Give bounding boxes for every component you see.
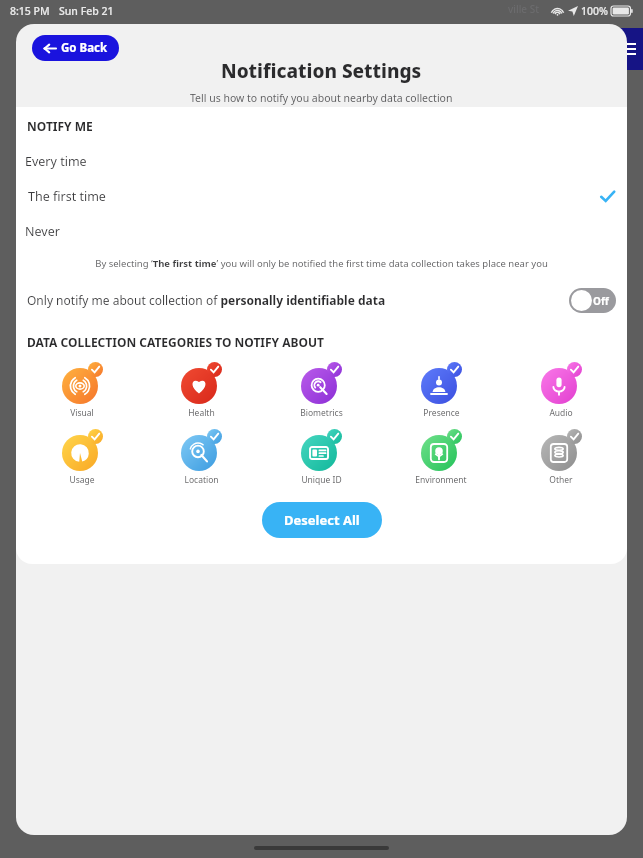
staticText: NOTIFY ME — [27, 118, 93, 134]
staticText: Only notify me about collection of perso… — [27, 292, 386, 308]
button[interactable]: Usage — [22, 429, 141, 486]
button[interactable]: Location — [141, 429, 261, 486]
staticText: Deselect All — [284, 511, 360, 529]
button[interactable]: Other — [501, 429, 621, 486]
staticText: Usage — [69, 474, 95, 486]
button[interactable]: Go Back — [32, 35, 119, 61]
button[interactable]: The first time — [19, 179, 624, 214]
staticText: By selecting ‘The first time’ you will o… — [95, 257, 548, 270]
staticText: Never — [25, 223, 60, 240]
button[interactable]: Presence — [381, 362, 501, 419]
staticText: Health — [188, 407, 215, 419]
button[interactable]: Menu — [617, 28, 643, 70]
staticText: Notification Settings — [221, 58, 422, 84]
staticText: 100% — [581, 4, 608, 18]
staticText: Environment — [415, 474, 467, 486]
staticText: Other — [549, 474, 573, 486]
staticText: Go Back — [61, 40, 108, 56]
button[interactable]: Biometrics — [261, 362, 381, 419]
staticText: Every time — [25, 153, 87, 170]
staticText: ville St — [508, 2, 540, 16]
staticText: Off — [593, 294, 609, 308]
staticText: Biometrics — [300, 407, 343, 419]
button[interactable]: Audio — [501, 362, 621, 419]
staticText: DATA COLLECTION CATEGORIES TO NOTIFY ABO… — [27, 334, 325, 350]
staticText: Sun Feb 21 — [59, 4, 114, 18]
staticText: Tell us how to notify you about nearby d… — [190, 91, 453, 105]
button[interactable]: Unique ID — [261, 429, 381, 486]
staticText: Location — [184, 474, 219, 486]
staticText: Visual — [70, 407, 94, 419]
staticText: Unique ID — [301, 474, 342, 486]
staticText: Presence — [423, 407, 460, 419]
button[interactable]: Only notify me about collection of perso… — [16, 280, 627, 320]
staticText: 8:15 PM — [10, 4, 50, 18]
button[interactable]: Health — [141, 362, 261, 419]
button[interactable]: Off — [569, 288, 616, 313]
button[interactable]: Deselect All — [262, 502, 382, 538]
button[interactable]: Never — [16, 214, 627, 249]
button[interactable]: Environment — [381, 429, 501, 486]
button[interactable]: Every time — [16, 144, 627, 179]
button[interactable]: Visual — [22, 362, 141, 419]
staticText: Audio — [549, 407, 573, 419]
staticText: The first time — [28, 188, 106, 205]
